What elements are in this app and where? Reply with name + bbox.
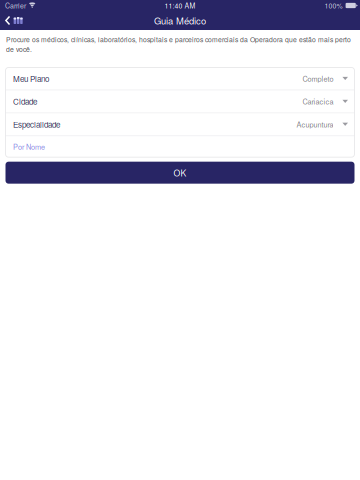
- staticText: Acupuntura: [296, 119, 333, 129]
- button[interactable]: Por Nome: [5, 136, 354, 157]
- staticText: 11:40 AM: [164, 0, 195, 10]
- staticText: Guia Médico: [154, 14, 206, 27]
- button[interactable]: Back: [0, 14, 29, 27]
- button[interactable]: Meu Plano: [5, 67, 354, 89]
- staticText: Cariacica: [302, 96, 333, 107]
- staticText: Especialidade: [13, 118, 60, 130]
- staticText: Procure os médicos, clínicas, laboratóri…: [6, 34, 351, 54]
- button[interactable]: OK: [5, 162, 354, 184]
- staticText: OK: [173, 166, 186, 179]
- button[interactable]: Especialidade: [5, 113, 354, 135]
- button[interactable]: Cidade: [5, 90, 354, 112]
- staticText: Carrier: [5, 0, 26, 10]
- staticText: 100%: [324, 0, 342, 10]
- staticText: Cidade: [13, 96, 37, 107]
- staticText: Completo: [302, 73, 333, 84]
- staticText: Meu Plano: [13, 73, 49, 84]
- staticText: Por Nome: [13, 141, 45, 152]
